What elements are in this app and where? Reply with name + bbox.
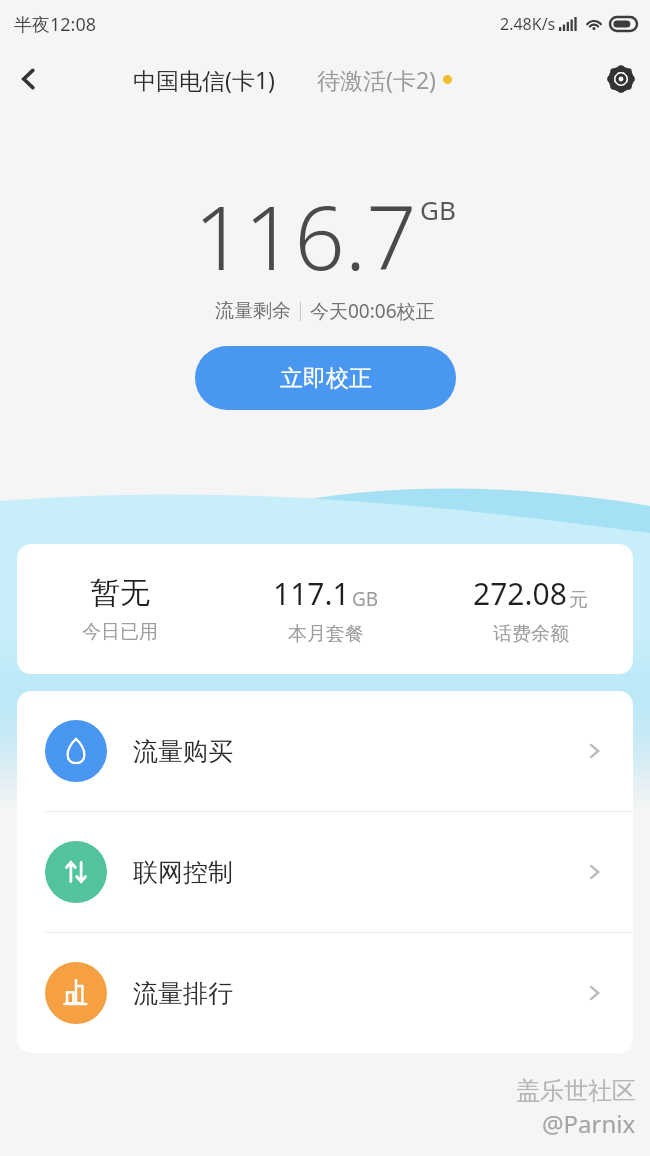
staticText: @Parnix xyxy=(542,1107,636,1140)
staticText: 联网控制 xyxy=(133,857,233,888)
button[interactable]: 暂无 xyxy=(17,544,633,674)
staticText: 本月套餐 xyxy=(288,622,364,646)
staticText: GB xyxy=(420,192,456,227)
staticText: 盖乐世社区 xyxy=(516,1076,636,1106)
staticText: 暂无 xyxy=(90,574,150,612)
staticText: 立即校正 xyxy=(280,364,372,393)
staticText: 中国电信(卡1) xyxy=(133,64,275,95)
staticText: 今日已用 xyxy=(82,620,158,644)
staticText: 待激活(卡2) xyxy=(317,64,436,95)
staticText: GB xyxy=(352,586,379,612)
staticText: 116.7 xyxy=(194,176,417,296)
staticText: 今天00:06校正 xyxy=(310,298,435,324)
button[interactable]: 立即校正 xyxy=(195,346,456,410)
button[interactable]: 中国电信(卡1) xyxy=(133,64,275,95)
button[interactable]: Back xyxy=(0,50,58,108)
button[interactable]: 待激活(卡2) xyxy=(317,64,452,95)
staticText: 半夜12:08 xyxy=(14,12,97,37)
button[interactable]: 流量购买 xyxy=(17,691,633,811)
button[interactable]: 流量排行 xyxy=(17,933,633,1053)
button[interactable]: 联网控制 xyxy=(17,812,633,932)
staticText: 117.1 xyxy=(273,573,350,614)
staticText: 流量剩余 xyxy=(215,299,291,323)
staticText: 272.08 xyxy=(473,573,567,614)
button[interactable]: Settings xyxy=(592,50,650,108)
staticText: 话费余额 xyxy=(493,622,569,646)
staticText: 元 xyxy=(569,588,588,612)
staticText: 流量排行 xyxy=(133,978,233,1009)
staticText: 流量购买 xyxy=(133,736,233,767)
staticText: 2.48K/s xyxy=(500,13,556,35)
